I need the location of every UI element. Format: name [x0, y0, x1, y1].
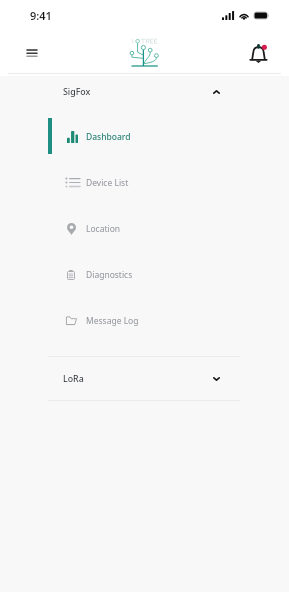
staticText: Dashboard [86, 131, 131, 143]
button[interactable]: Diagnostics [0, 251, 289, 297]
button[interactable]: Dashboard [0, 113, 289, 159]
staticText: SigFox [63, 86, 91, 98]
button[interactable]: Notifications [243, 36, 273, 66]
staticText: LoRa [63, 373, 84, 385]
staticText: 9:41 [30, 8, 52, 23]
button[interactable]: LoRa [0, 357, 289, 400]
staticText: Device List [86, 177, 129, 189]
button[interactable]: SigFox [0, 82, 289, 102]
staticText: Location [86, 223, 121, 235]
button[interactable]: Message Log [0, 297, 289, 343]
staticText: Message Log [86, 315, 139, 327]
button[interactable]: Device List [0, 159, 289, 205]
staticText: Diagnostics [86, 269, 133, 281]
button[interactable]: Menu [17, 36, 47, 66]
button[interactable]: Location [0, 205, 289, 251]
